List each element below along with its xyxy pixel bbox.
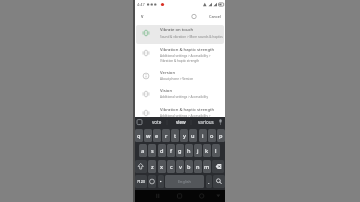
staticText: p [219,132,223,140]
button[interactable]: n [194,160,202,173]
button[interactable]: e [153,129,161,142]
button[interactable]: m [203,160,211,173]
button[interactable]: b [185,160,193,173]
staticText: . [208,178,210,186]
staticText: Sound & vibration > More sounds & haptic… [160,35,223,39]
staticText: About phone > Version [160,77,194,81]
staticText: v [141,13,144,19]
button[interactable]: s [148,144,156,157]
staticText: g [178,147,182,155]
button[interactable]: r [162,129,170,142]
button[interactable]: p [217,129,225,142]
staticText: e [155,132,159,140]
staticText: ?123 [137,179,145,184]
staticText: Cancel [209,14,222,19]
staticText: z [151,163,154,171]
button[interactable]: y [180,129,188,142]
staticText: Vision [160,88,173,94]
button[interactable] [134,85,225,103]
staticText: o [210,132,214,140]
staticText: Additional settings > Accessibility > [160,114,211,118]
button[interactable]: z [148,160,156,173]
staticText: y [183,132,186,140]
button[interactable]: . [206,175,212,188]
button[interactable]: q [135,129,143,142]
staticText: k [205,147,209,155]
button[interactable]: k [203,144,211,157]
staticText: Vibration & haptic strength [160,59,200,63]
button[interactable]: u [189,129,197,142]
button[interactable]: v [134,9,225,24]
staticText: q [137,132,141,140]
button[interactable] [148,175,156,188]
staticText: 4:47 [137,2,145,7]
staticText: i [202,132,204,140]
staticText: c [170,163,173,171]
staticText: vote [152,119,162,125]
button[interactable]: g [176,144,184,157]
button[interactable]: l [212,144,220,157]
staticText: b [187,163,191,171]
staticText: Additional settings > Accessibility > [160,54,211,58]
button[interactable]: c [167,160,175,173]
staticText: j [197,147,199,155]
staticText: r [165,132,168,140]
button[interactable]: a [139,144,147,157]
button[interactable] [158,175,164,188]
staticText: m [204,163,210,171]
staticText: u [191,132,195,140]
staticText: view [176,119,186,125]
staticText: d [160,147,164,155]
staticText: Vibration & haptic strength [160,47,215,53]
staticText: x [160,163,164,171]
staticText: n [196,163,200,171]
staticText: Vibrate on touch [160,27,194,33]
button[interactable]: w [144,129,152,142]
button[interactable]: t [171,129,179,142]
staticText: Additional settings > Accessibility [160,95,208,99]
staticText: v [179,163,182,171]
button[interactable] [165,175,204,188]
staticText: w [146,132,151,140]
button[interactable] [212,160,224,173]
staticText: s [151,147,154,155]
staticText: various [198,119,214,125]
button[interactable]: j [194,144,202,157]
staticText: English [178,179,191,184]
button[interactable] [134,67,225,85]
button[interactable]: f [167,144,175,157]
button[interactable]: o [208,129,216,142]
button[interactable] [135,160,147,173]
button[interactable]: d [158,144,166,157]
button[interactable]: v [176,160,184,173]
button[interactable] [134,44,225,67]
staticText: h [187,147,191,155]
button[interactable]: h [185,144,193,157]
button[interactable]: x [158,160,166,173]
button[interactable]: i [199,129,207,142]
staticText: a [141,147,145,155]
staticText: f [170,147,172,155]
staticText: Version [160,70,176,76]
button[interactable] [134,103,225,117]
button[interactable] [136,25,224,44]
staticText: l [215,147,217,155]
staticText: Vibration & haptic strength [160,107,215,113]
button[interactable]: ?123 [135,175,147,188]
staticText: t [174,132,177,140]
button[interactable] [213,175,225,188]
